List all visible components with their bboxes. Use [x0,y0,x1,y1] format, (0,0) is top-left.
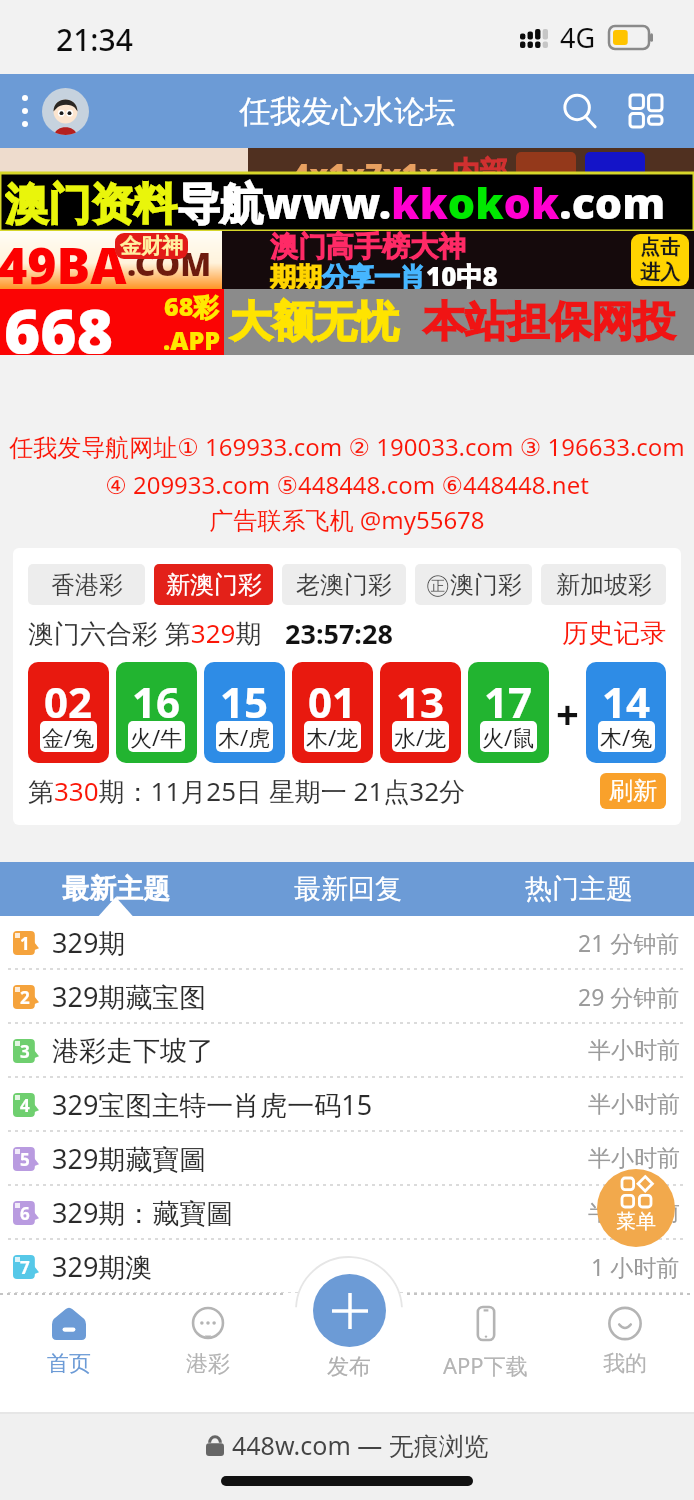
staticText: 火/鼠 [482,722,535,752]
staticText: 5 [20,1148,30,1171]
staticText: 329宝图主特一肖虎一码15 [52,1086,373,1123]
staticText: 本站担保网投 [423,296,675,349]
button[interactable]: 最新回复 [232,862,463,916]
staticText: 最新回复 [294,872,402,906]
staticText: 15 [220,673,269,730]
staticText: 火/牛 [130,722,183,752]
staticText: 金/兔 [42,722,95,752]
staticText: 21 分钟前 [578,927,680,958]
button[interactable]: 1 [0,916,694,969]
button[interactable]: 49TA.com [0,148,694,355]
staticText: 半小时前 [588,1198,680,1227]
button[interactable]: 新加坡彩 [541,564,666,605]
button[interactable]: 6 [0,1186,694,1239]
staticText: 香港彩 [51,570,123,600]
staticText: 4G [560,19,596,56]
button[interactable]: Grid menu [618,83,674,139]
staticText: 第330期：11月25日 星期一 21点32分 [28,773,466,809]
staticText: 329期藏宝图 [52,978,207,1015]
staticText: 329期 [52,924,126,961]
button[interactable]: 4 [0,1078,694,1131]
staticText: 港彩走下坡了 [52,1034,214,1068]
staticText: 分享一肖 [322,261,426,294]
button[interactable]: 3 [0,1024,694,1077]
staticText: 4 [20,1094,30,1117]
button[interactable]: APP下载 [416,1307,555,1414]
staticText: .APP [163,323,220,355]
staticText: 10中8 [426,258,498,294]
staticText: 68彩 [164,289,219,323]
staticText: 任我发导航网址① 169933.com ② 190033.com ③ 19663… [0,430,694,536]
button[interactable]: 老澳门彩 [282,564,406,605]
staticText: 木/虎 [218,722,271,752]
staticText: 半小时前 [588,1036,680,1065]
staticText: 内部 [452,154,508,173]
button[interactable]: 7 [0,1240,694,1293]
staticText: 1 小时前 [591,1251,680,1282]
staticText: APP下载 [443,1350,528,1380]
staticText: 首页 [47,1350,91,1378]
button[interactable]: 发布 [327,1353,371,1381]
staticText: 1 [20,932,30,955]
staticText: 329期藏寶圖 [52,1140,207,1177]
button[interactable]: ㊣澳门彩 [415,564,532,605]
button[interactable]: 2 [0,970,694,1023]
staticText: 01 [308,673,357,730]
staticText: 49TA.com [2,157,217,173]
staticText: 任我发心水论坛 [239,92,456,131]
staticText: 期期 [270,261,322,294]
staticText: 329期：藏寶圖 [52,1194,234,1231]
staticText: 澳门六合彩 第329期 [28,615,262,651]
button[interactable]: 刷新 [600,773,666,809]
staticText: 大额无忧 [230,296,398,349]
button[interactable]: 最新主题 [0,862,232,916]
staticText: 2 [20,986,30,1009]
staticText: 最新主题 [62,872,170,906]
staticText: 16 [132,673,181,730]
staticText: 热门主题 [525,872,633,906]
staticText: 7 [20,1256,30,1279]
staticText: 新加坡彩 [556,570,652,600]
staticText: 新澳门彩 [166,570,262,600]
button[interactable]: 热门主题 [463,862,694,916]
button[interactable]: Post new thread [313,1274,386,1347]
staticText: 668 [4,288,113,354]
staticText: 13 [396,673,445,730]
staticText: 4x1x7x1x [292,154,438,173]
staticText: 6 [20,1202,30,1225]
button[interactable]: 菜单 [597,1169,675,1247]
staticText: 3 [20,1040,30,1063]
staticText: 17 [484,673,533,730]
button[interactable]: More options [14,86,36,136]
staticText: 29 分钟前 [578,981,680,1012]
staticText: 木/龙 [306,722,359,752]
staticText: 老澳门彩 [296,570,392,600]
staticText: 点击 [640,235,680,260]
staticText: 23:57:28 [285,615,393,651]
button[interactable]: 我的 [555,1307,694,1414]
button[interactable]: 港彩 [138,1307,277,1414]
staticText: 329期澳 [52,1248,153,1285]
button[interactable]: 香港彩 [28,564,145,605]
staticText: ㊣澳门彩 [426,570,522,600]
staticText: 21:34 [56,19,133,60]
button[interactable]: Search [552,83,608,139]
staticText: 我的 [603,1350,647,1378]
staticText: 刷新 [609,776,657,806]
staticText: 港彩 [186,1350,230,1378]
staticText: 448w.com — 无痕浏览 [232,1428,489,1462]
staticText: 澳门资料导航www.kkokok.com [5,173,666,231]
staticText: + [556,686,579,740]
button[interactable]: Profile [42,88,89,135]
button[interactable]: 5 [0,1132,694,1185]
staticText: 14 [602,673,651,730]
staticText: 木/兔 [600,722,653,752]
staticText: 水/龙 [394,722,447,752]
button[interactable]: 历史记录 [562,617,666,650]
staticText: 进入 [640,260,680,285]
staticText: 菜单 [616,1209,656,1234]
button[interactable]: 首页 [0,1307,138,1414]
staticText: 02 [44,673,93,730]
button[interactable]: 新澳门彩 [154,564,273,605]
staticText: 金财神 [120,233,183,259]
